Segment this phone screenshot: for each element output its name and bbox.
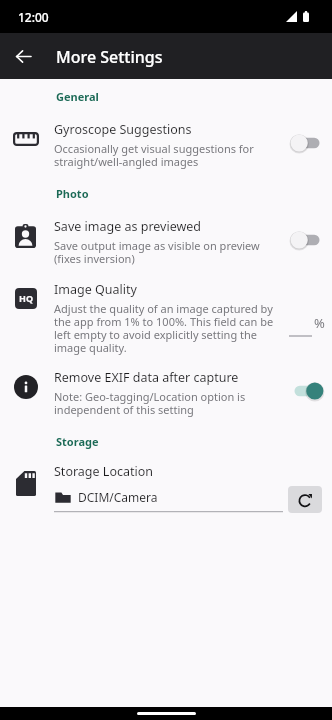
- staticText: HQ: [19, 292, 34, 304]
- staticText: %: [314, 314, 325, 332]
- button[interactable]: Reset storage location: [288, 486, 322, 513]
- staticText: More Settings: [56, 46, 163, 68]
- staticText: Save image as previewed: [54, 218, 202, 235]
- staticText: Save output image as visible on preview …: [54, 238, 286, 266]
- staticText: Note: Geo-tagging/Location option is ind…: [54, 389, 286, 417]
- staticText: Photo: [56, 186, 89, 201]
- staticText: Storage Location: [54, 463, 154, 480]
- staticText: Storage: [56, 434, 99, 449]
- button[interactable]: Switch off: [290, 229, 324, 251]
- button[interactable]: Save image as previewed: [0, 201, 332, 270]
- button[interactable]: Gyroscope Suggestions: [0, 104, 332, 173]
- button[interactable]: HQ: [0, 270, 332, 359]
- button[interactable]: Remove EXIF data after capture: [0, 359, 332, 421]
- button[interactable]: Storage Location: [0, 449, 332, 513]
- staticText: Adjust the quality of an image captured …: [54, 301, 277, 355]
- button[interactable]: Image quality percent: [289, 319, 312, 337]
- button[interactable]: Switch off: [290, 132, 324, 154]
- staticText: DCIM/Camera: [78, 489, 158, 505]
- staticText: Gyroscope Suggestions: [54, 121, 192, 138]
- staticText: Remove EXIF data after capture: [54, 369, 239, 386]
- staticText: General: [56, 89, 99, 104]
- button[interactable]: Navigate up: [6, 39, 40, 73]
- button[interactable]: Switch on: [290, 380, 324, 402]
- staticText: Image Quality: [54, 281, 137, 298]
- staticText: 12:00: [18, 9, 49, 25]
- staticText: Occasionally get visual suggestions for …: [54, 141, 286, 169]
